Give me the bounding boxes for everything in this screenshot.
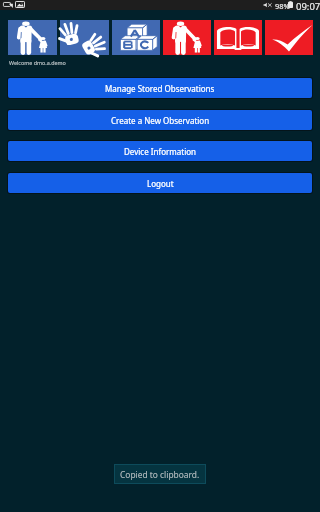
button[interactable]: Book [214, 20, 262, 55]
staticText: Device Information [124, 146, 197, 157]
staticText: 09:07 [296, 0, 320, 10]
staticText: Manage Stored Observations [105, 83, 215, 94]
button[interactable]: Logout [8, 173, 312, 193]
staticText: Welcome dmo.a.demo [9, 59, 66, 66]
button[interactable]: Device Information [8, 141, 312, 161]
staticText: Create a New Observation [111, 115, 210, 126]
button[interactable]: Manage Stored Observations [8, 78, 312, 98]
staticText: 98% [275, 1, 290, 11]
staticText: Logout [147, 178, 174, 189]
staticText: Copied to clipboard. [120, 469, 200, 480]
button[interactable]: Create a New Observation [8, 110, 312, 130]
button[interactable]: Confirm [265, 20, 313, 55]
button[interactable]: Adult and child [8, 20, 57, 55]
button[interactable]: ABC blocks [112, 20, 160, 55]
button[interactable]: Child safety [163, 20, 211, 55]
button[interactable]: Handprints [60, 20, 109, 55]
